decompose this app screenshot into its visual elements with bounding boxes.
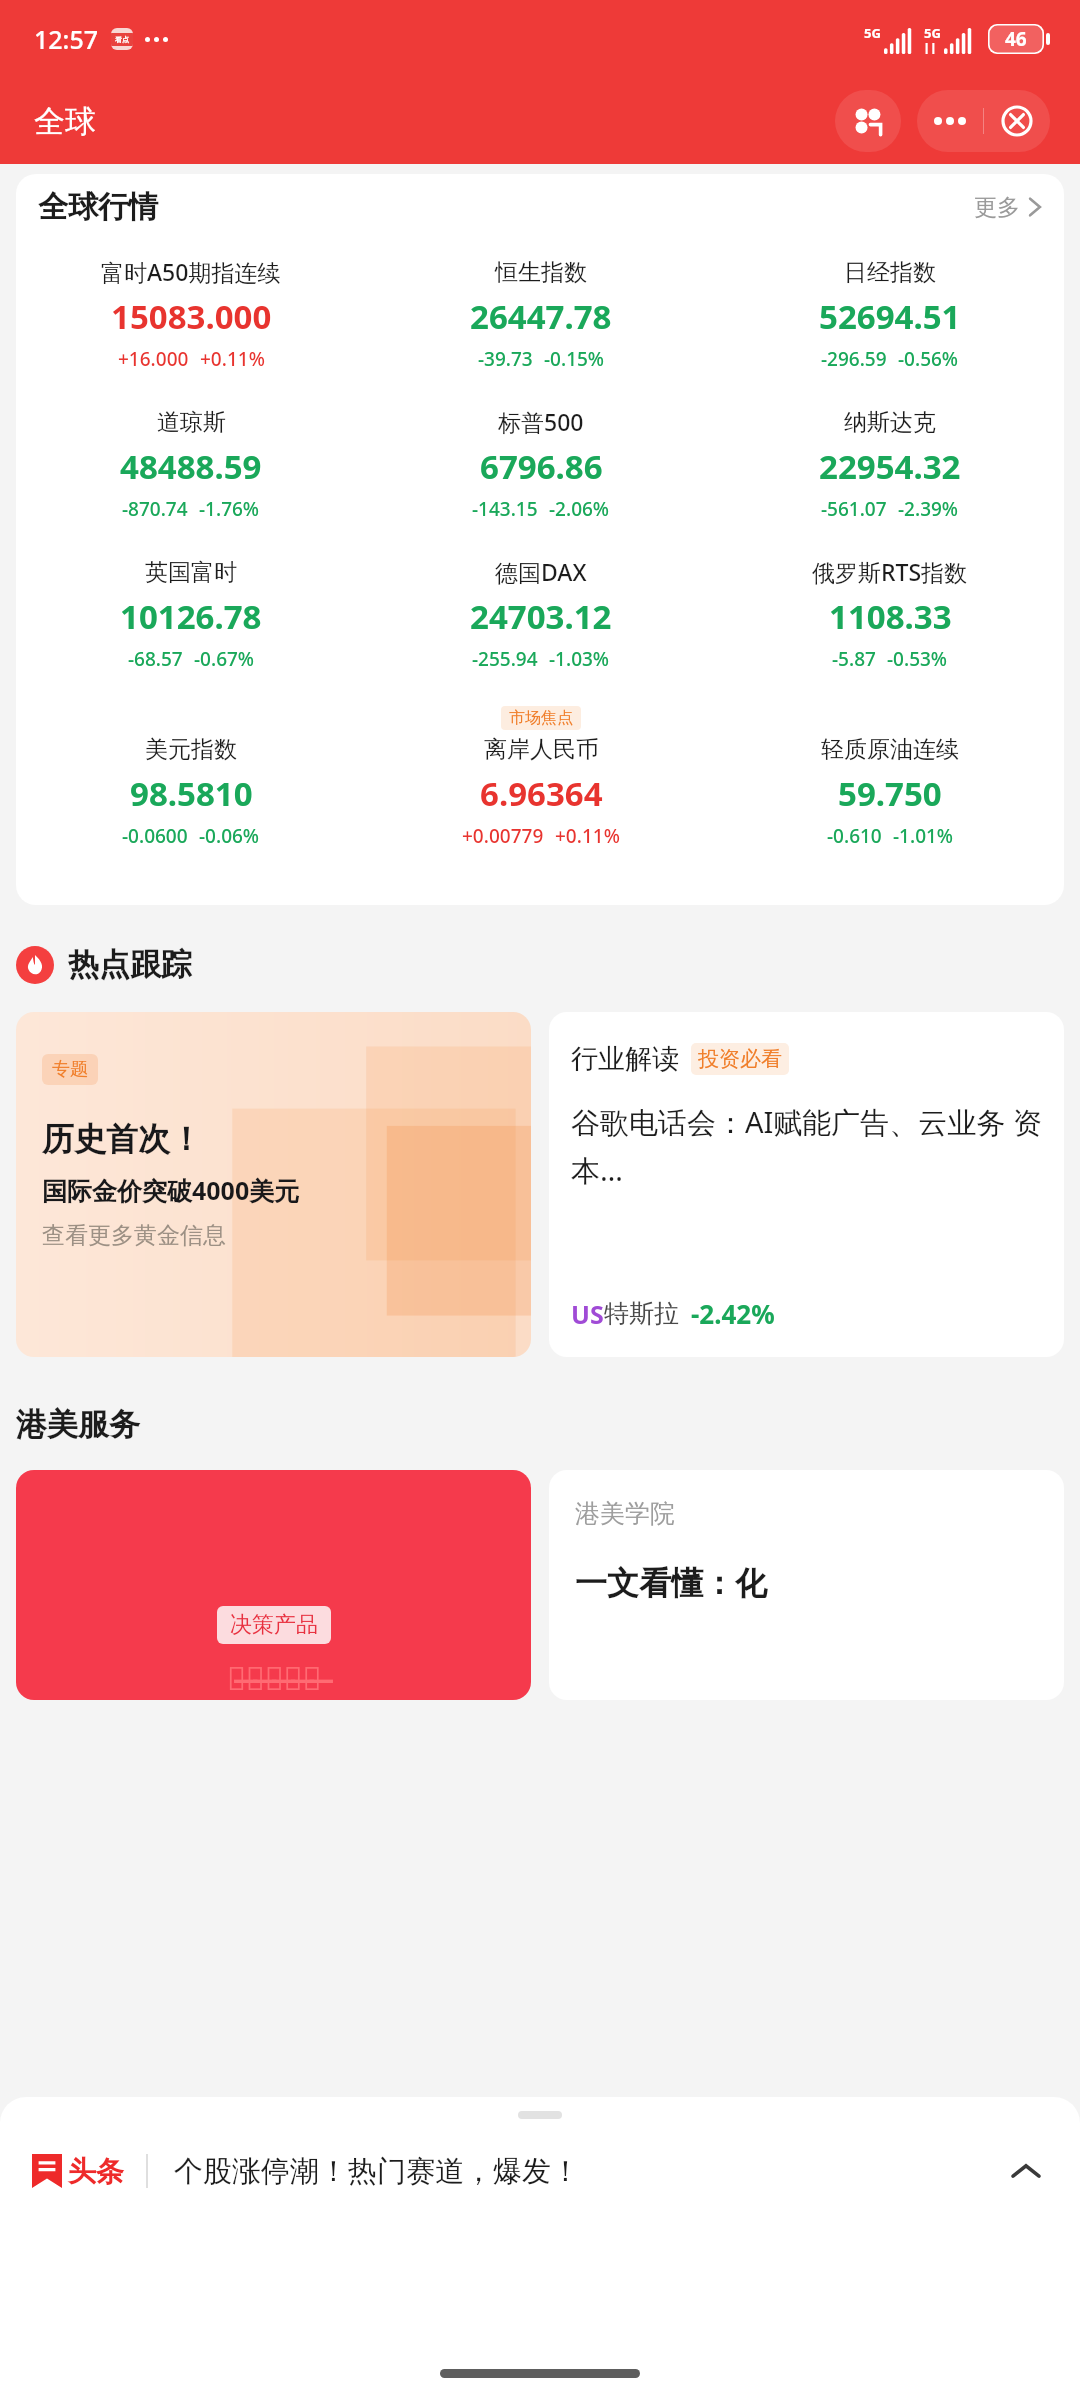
staticText: -0.610: [827, 823, 882, 849]
staticText: 15083.000: [111, 294, 272, 339]
staticText: 专题: [52, 1058, 88, 1081]
staticText: 6.96364: [480, 771, 603, 816]
staticText: 6796.86: [480, 444, 603, 489]
button[interactable]: 轻质原油连续: [821, 735, 959, 849]
button[interactable]: Mini program: [835, 90, 901, 152]
button[interactable]: Expand: [1004, 2149, 1048, 2193]
staticText: 更多: [974, 193, 1020, 222]
staticText: 10126.78: [120, 594, 262, 639]
staticText: 标普500: [498, 406, 584, 437]
staticText: -0.56%: [898, 346, 959, 372]
button[interactable]: More options: [917, 90, 983, 152]
staticText: -0.53%: [887, 646, 948, 672]
button[interactable]: 头条: [0, 2149, 1080, 2193]
staticText: 5G: [924, 24, 941, 42]
staticText: +16.000: [118, 346, 189, 372]
staticText: 投资必看: [698, 1046, 782, 1072]
staticText: 头条: [68, 2154, 124, 2189]
staticText: -2.06%: [549, 496, 610, 522]
button[interactable]: 德国DAX: [470, 556, 612, 672]
staticText: -5.87: [832, 646, 876, 672]
staticText: -870.74: [122, 496, 188, 522]
staticText: 全球行情: [38, 188, 158, 226]
staticText: 行业解读: [571, 1042, 679, 1076]
staticText: 道琼斯: [157, 408, 226, 437]
staticText: 24703.12: [470, 594, 612, 639]
staticText: 离岸人民币: [484, 735, 599, 764]
staticText: 市场焦点: [509, 708, 573, 728]
staticText: 国际金价突破4000美元: [42, 1173, 300, 1207]
button[interactable]: 专题: [16, 1012, 531, 1357]
staticText: -0.15%: [544, 346, 605, 372]
staticText: 日经指数: [844, 258, 936, 287]
staticText: 98.5810: [130, 771, 253, 816]
button[interactable]: Close: [984, 90, 1050, 152]
button[interactable]: 纳斯达克: [819, 408, 961, 522]
button[interactable]: 英国富时: [120, 558, 262, 672]
staticText: US: [571, 1297, 604, 1331]
staticText: -561.07: [821, 496, 887, 522]
staticText: -0.0600: [122, 823, 188, 849]
staticText: -1.01%: [893, 823, 954, 849]
staticText: -143.15: [472, 496, 538, 522]
staticText: -0.67%: [194, 646, 255, 672]
staticText: 港美服务: [16, 1405, 140, 1444]
staticText: +0.00779: [462, 823, 544, 849]
staticText: 历史首次！: [42, 1119, 202, 1159]
staticText: 5G: [864, 24, 881, 42]
staticText: 48488.59: [120, 444, 262, 489]
staticText: -1.03%: [549, 646, 610, 672]
staticText: -0.06%: [199, 823, 260, 849]
button[interactable]: 道琼斯: [120, 408, 262, 522]
staticText: +0.11%: [555, 823, 620, 849]
staticText: -2.39%: [898, 496, 959, 522]
staticText: 59.750: [838, 771, 942, 816]
button[interactable]: 港美学院: [549, 1470, 1064, 1700]
staticText: +0.11%: [200, 346, 265, 372]
staticText: 美元指数: [145, 735, 237, 764]
staticText: 恒生指数: [495, 258, 587, 287]
button[interactable]: 日经指数: [819, 258, 961, 372]
button[interactable]: 俄罗斯RTS指数: [812, 556, 968, 672]
button[interactable]: 全球行情: [16, 174, 1064, 230]
staticText: 看点: [115, 35, 129, 44]
button[interactable]: 行业解读: [549, 1012, 1064, 1357]
staticText: 全球: [34, 102, 96, 141]
staticText: -296.59: [821, 346, 887, 372]
staticText: 22954.32: [819, 444, 961, 489]
staticText: 26447.78: [470, 294, 612, 339]
staticText: 港美学院: [575, 1498, 675, 1529]
staticText: 热点跟踪: [68, 945, 192, 984]
staticText: -255.94: [472, 646, 538, 672]
staticText: 富时A50期指连续: [101, 256, 281, 287]
staticText: 12:57: [34, 22, 99, 56]
staticText: 轻质原油连续: [821, 735, 959, 764]
staticText: 查看更多黄金信息: [42, 1221, 226, 1250]
staticText: -39.73: [478, 346, 533, 372]
button[interactable]: 富时A50期指连续: [101, 256, 281, 372]
staticText: 一文看懂：化: [575, 1563, 767, 1603]
button[interactable]: 市场焦点: [462, 706, 620, 849]
staticText: -2.42%: [691, 1296, 775, 1331]
button[interactable]: 美元指数: [122, 735, 260, 849]
staticText: 港̶美̶股̶决̶策̶: [227, 1656, 322, 1700]
button[interactable]: 决策产品: [16, 1470, 531, 1700]
staticText: 英国富时: [145, 558, 237, 587]
staticText: 1108.33: [829, 594, 952, 639]
staticText: 52694.51: [819, 294, 961, 339]
staticText: 决策产品: [230, 1611, 318, 1639]
staticText: -68.57: [128, 646, 183, 672]
staticText: 俄罗斯RTS指数: [812, 556, 968, 587]
staticText: 个股涨停潮！热门赛道，爆发！: [174, 2153, 994, 2190]
staticText: 谷歌电话会：AI赋能广告、云业务 资本…: [571, 1102, 1048, 1190]
staticText: 特斯拉: [604, 1298, 679, 1329]
staticText: 46: [1005, 26, 1027, 52]
button[interactable]: 恒生指数: [470, 258, 612, 372]
staticText: 纳斯达克: [844, 408, 936, 437]
staticText: 德国DAX: [495, 556, 587, 587]
staticText: -1.76%: [199, 496, 260, 522]
button[interactable]: 标普500: [472, 406, 610, 522]
